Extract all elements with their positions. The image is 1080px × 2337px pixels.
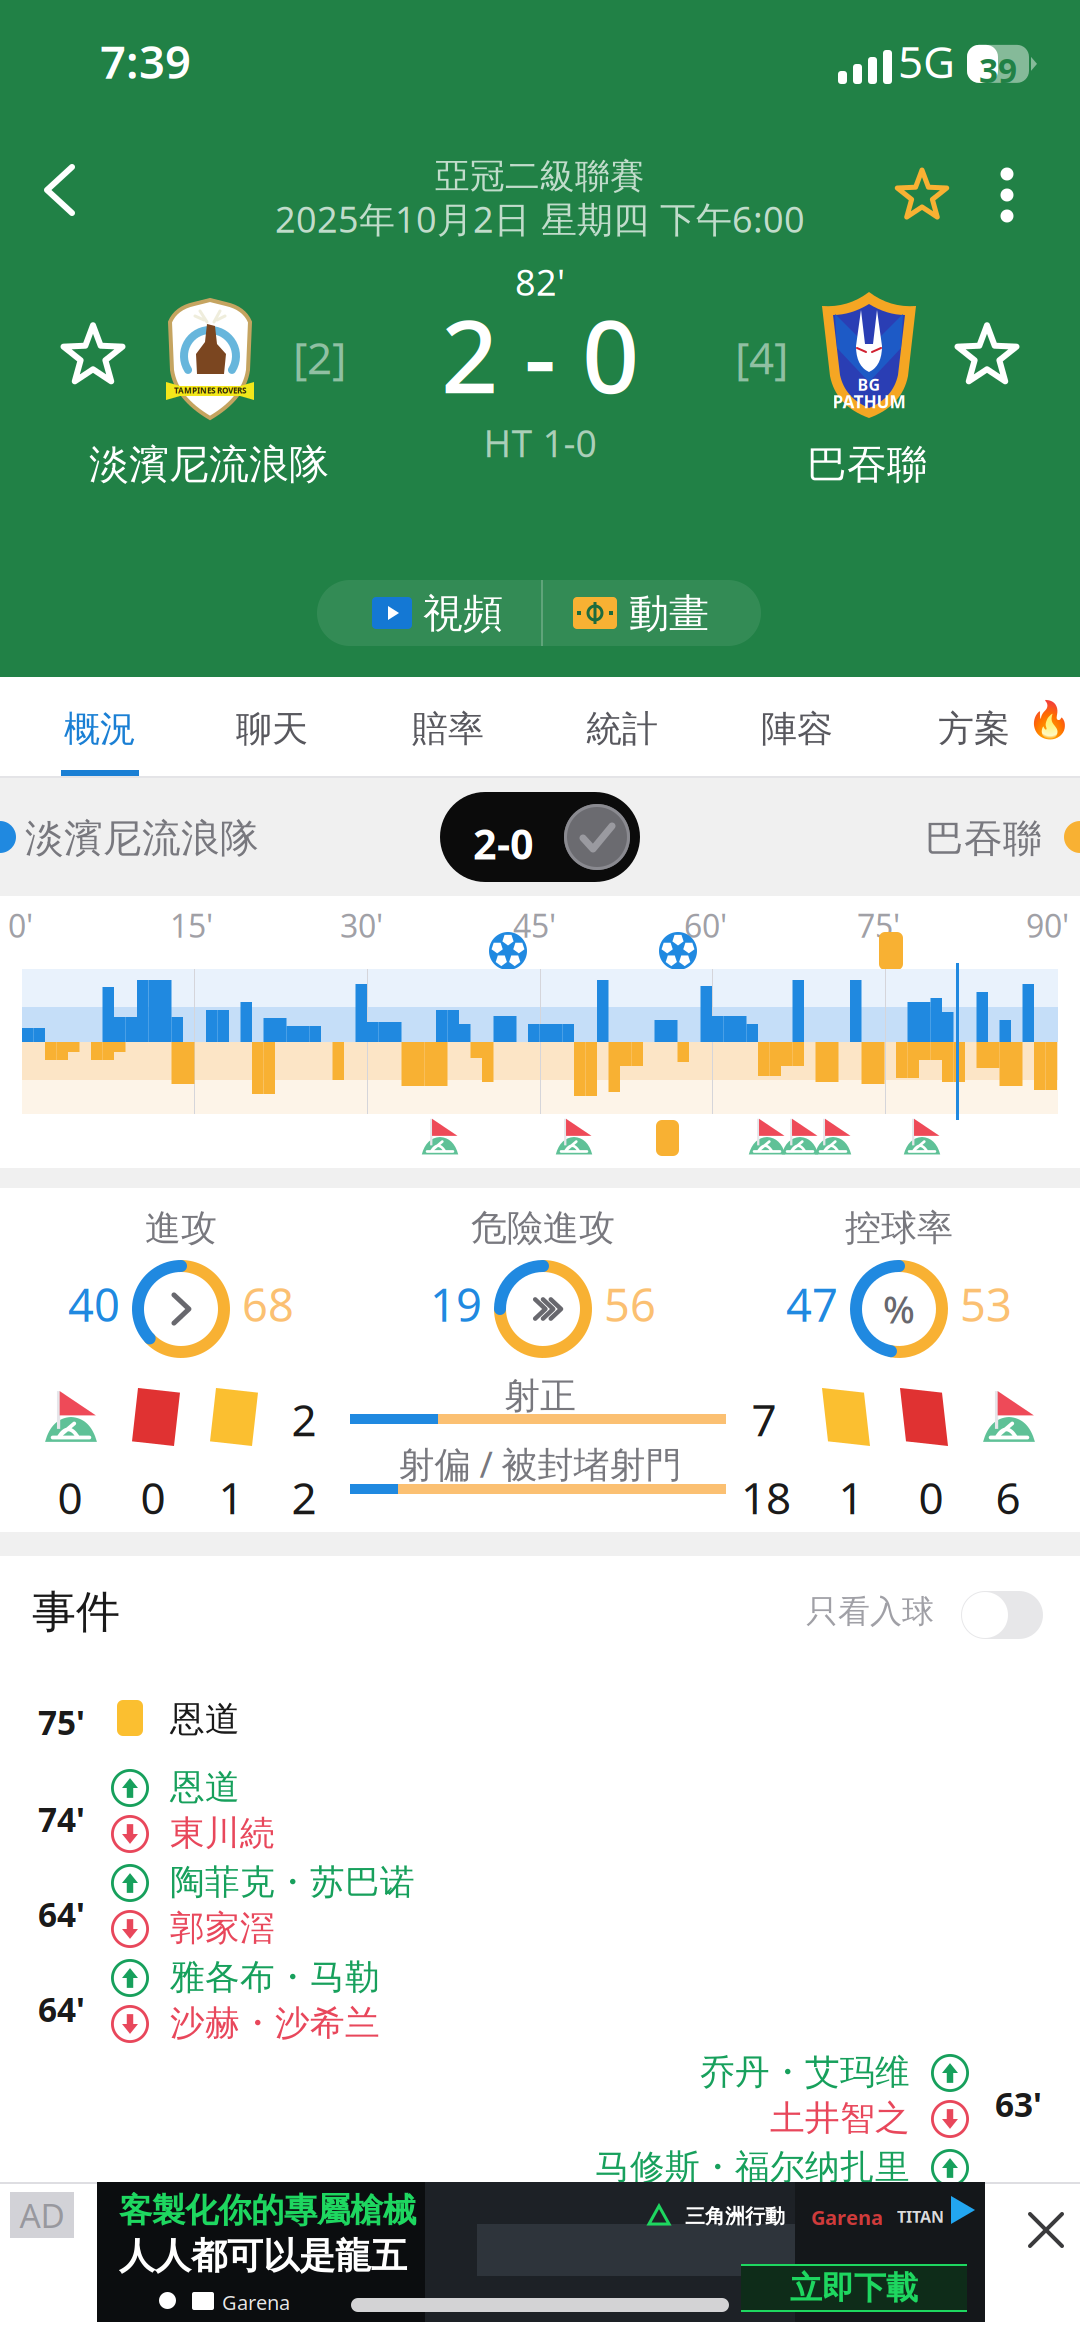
staticText: 亞冠二級聯賽 bbox=[435, 155, 645, 198]
button[interactable]: 視頻 bbox=[317, 580, 541, 646]
staticText: 恩道 bbox=[170, 1698, 240, 1741]
staticText: 1 bbox=[218, 1468, 243, 1526]
staticText: 19 bbox=[430, 1274, 482, 1334]
staticText: 75' bbox=[857, 904, 900, 946]
staticText: 82' bbox=[515, 258, 565, 306]
staticText: 雅各布・马勒 bbox=[170, 1956, 380, 1999]
staticText: 60' bbox=[684, 904, 727, 946]
staticText: 聊天 bbox=[236, 707, 308, 751]
staticText: 東川続 bbox=[170, 1812, 275, 1855]
button[interactable]: Goals only bbox=[961, 1591, 1043, 1639]
button[interactable]: 聊天 bbox=[185, 677, 359, 778]
staticText: PATHUM bbox=[832, 390, 905, 413]
staticText: 淡濱尼流浪隊 bbox=[89, 440, 329, 489]
staticText: 0' bbox=[8, 904, 33, 946]
staticText: 人人都可以是龍五 bbox=[119, 2234, 407, 2278]
staticText: 64' bbox=[38, 1987, 85, 2031]
staticText: 2025年10月2日 星期四 下午6:00 bbox=[275, 195, 805, 243]
staticText: [4] bbox=[735, 328, 788, 386]
staticText: 1 bbox=[838, 1468, 863, 1526]
button[interactable]: 陣容 bbox=[710, 677, 884, 778]
button[interactable]: Advertisement bbox=[97, 2182, 985, 2322]
button[interactable]: Follow 淡濱尼流浪隊 bbox=[38, 300, 148, 410]
staticText: 射偏 / 被封堵射門 bbox=[398, 1440, 681, 1488]
button[interactable]: Back bbox=[0, 140, 120, 250]
staticText: BG bbox=[857, 374, 880, 395]
staticText: 視頻 bbox=[423, 589, 503, 638]
staticText: % bbox=[883, 1284, 915, 1334]
staticText: 2 bbox=[291, 1390, 316, 1448]
staticText: 方案 bbox=[938, 707, 1010, 751]
button[interactable]: 賠率 bbox=[361, 677, 535, 778]
staticText: 39 bbox=[979, 48, 1017, 92]
staticText: 危險進攻 bbox=[471, 1206, 615, 1250]
button[interactable]: Close ad bbox=[1004, 2188, 1080, 2272]
staticText: 0 bbox=[140, 1468, 165, 1526]
staticText: 統計 bbox=[586, 707, 658, 751]
staticText: Garena bbox=[222, 2289, 290, 2316]
staticText: 概況 bbox=[64, 707, 136, 751]
button[interactable]: Favourite bbox=[867, 140, 977, 250]
staticText: 淡濱尼流浪隊 bbox=[25, 815, 259, 862]
staticText: 射正 bbox=[504, 1374, 576, 1418]
staticText: 三角洲行動 bbox=[685, 2204, 785, 2229]
staticText: 陶菲克・苏巴诺 bbox=[170, 1861, 415, 1904]
staticText: 乔丹・艾玛维 bbox=[700, 2051, 910, 2094]
staticText: [2] bbox=[293, 328, 346, 386]
staticText: 2 bbox=[291, 1468, 316, 1526]
staticText: 動畫 bbox=[629, 589, 709, 638]
staticText: 64' bbox=[38, 1892, 85, 1936]
staticText: AD bbox=[19, 2193, 64, 2237]
staticText: 賠率 bbox=[412, 707, 484, 751]
staticText: 63' bbox=[995, 2082, 1042, 2126]
staticText: 郭家滘 bbox=[170, 1907, 275, 1950]
staticText: 沙赫・沙希兰 bbox=[170, 2002, 380, 2045]
staticText: 15' bbox=[170, 904, 213, 946]
staticText: 0 bbox=[57, 1468, 82, 1526]
staticText: 74' bbox=[38, 1797, 85, 1841]
staticText: 控球率 bbox=[845, 1206, 953, 1250]
staticText: 土井智之 bbox=[770, 2097, 910, 2140]
staticText: 2-0 bbox=[473, 816, 534, 871]
staticText: 6 bbox=[995, 1468, 1020, 1526]
staticText: 0 bbox=[918, 1468, 943, 1526]
staticText: 🔥 bbox=[1027, 699, 1072, 740]
staticText: 75' bbox=[38, 1700, 85, 1744]
staticText: 7:39 bbox=[100, 31, 191, 91]
staticText: 63' bbox=[995, 2183, 1042, 2227]
button[interactable]: 方案 bbox=[887, 677, 1061, 778]
staticText: 47 bbox=[786, 1274, 838, 1334]
staticText: 45' bbox=[513, 904, 556, 946]
staticText: 5G bbox=[898, 32, 955, 90]
staticText: 56 bbox=[604, 1274, 656, 1334]
staticText: 18 bbox=[741, 1468, 791, 1526]
button[interactable]: Score 2-0 bbox=[440, 792, 640, 882]
button[interactable]: Follow 巴吞聯 bbox=[932, 300, 1042, 410]
staticText: 68 bbox=[242, 1274, 294, 1334]
button[interactable]: More options bbox=[967, 140, 1047, 250]
staticText: 巴吞聯 bbox=[925, 815, 1042, 862]
staticText: 恩道 bbox=[170, 1766, 240, 1809]
staticText: 進攻 bbox=[145, 1206, 217, 1250]
staticText: 7 bbox=[751, 1390, 776, 1448]
button[interactable]: 動畫 bbox=[543, 580, 761, 646]
staticText: 巴吞聯 bbox=[807, 440, 927, 489]
button[interactable]: 統計 bbox=[535, 677, 709, 778]
staticText: 客製化你的專屬槍械 bbox=[119, 2190, 416, 2231]
staticText: 30' bbox=[340, 904, 383, 946]
staticText: 2 - 0 bbox=[441, 288, 639, 421]
staticText: 40 bbox=[68, 1274, 120, 1334]
staticText: TITAN bbox=[897, 2206, 944, 2227]
staticText: 立即下載 bbox=[790, 2268, 918, 2308]
staticText: TAMPINES ROVERS bbox=[174, 385, 246, 396]
staticText: 90' bbox=[1026, 904, 1069, 946]
staticText: 马修斯・福尔纳扎里 bbox=[595, 2146, 910, 2189]
staticText: HT 1-0 bbox=[483, 418, 596, 468]
button[interactable]: 概況 bbox=[13, 677, 187, 778]
staticText: 53 bbox=[960, 1274, 1012, 1334]
staticText: 陣容 bbox=[761, 707, 833, 751]
staticText: Garena bbox=[811, 2204, 883, 2231]
staticText: 事件 bbox=[32, 1585, 120, 1639]
staticText: 只看入球 bbox=[806, 1592, 934, 1631]
